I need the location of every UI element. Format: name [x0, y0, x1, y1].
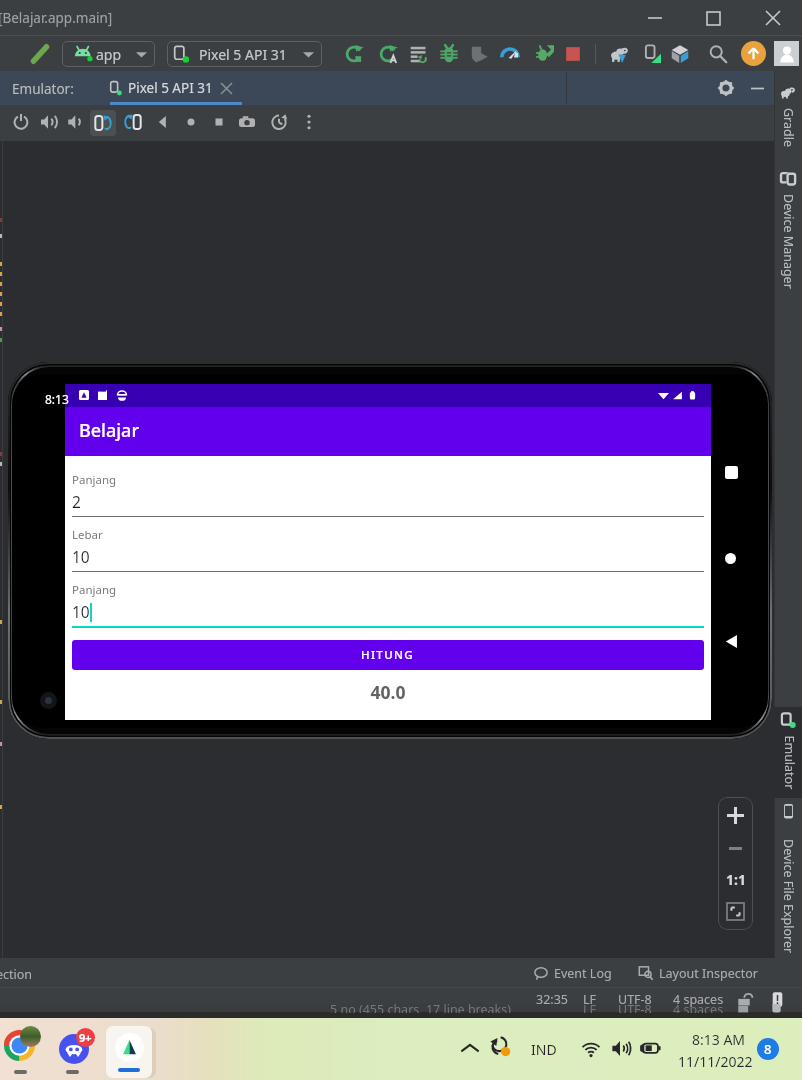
staticText: 8:13	[45, 391, 69, 407]
button[interactable]: OneDrive sync	[486, 1032, 514, 1060]
staticText: Lebar	[72, 527, 103, 543]
button[interactable]: Rotate right	[120, 109, 146, 135]
staticText: app	[96, 45, 122, 64]
button[interactable]: Notifications	[768, 990, 786, 1008]
staticText: 2	[72, 491, 81, 512]
staticText: Pixel 5 API 31	[199, 45, 287, 64]
button[interactable]: Discord	[52, 1018, 104, 1076]
button[interactable]: Device File Explorer	[774, 798, 802, 974]
staticText: 40.0	[65, 680, 711, 704]
button[interactable]: Lock	[736, 990, 754, 1008]
button[interactable]: Run with coverage	[373, 38, 404, 69]
staticText: IND	[531, 1040, 557, 1059]
button[interactable]: Build	[24, 38, 55, 69]
button[interactable]: Overview	[206, 109, 232, 135]
staticText: 10	[72, 546, 90, 567]
button[interactable]: Minimize	[625, 0, 684, 36]
staticText: LF	[583, 991, 597, 1008]
button[interactable]: More options	[296, 109, 322, 135]
staticText: 10	[72, 601, 90, 622]
button[interactable]: Home	[725, 553, 736, 564]
staticText: Pixel 5 API 31	[128, 79, 213, 97]
staticText: Emulator	[780, 735, 797, 789]
button[interactable]: HITUNG	[72, 640, 704, 670]
button[interactable]: app	[62, 41, 155, 67]
staticText: Belajar	[79, 418, 140, 443]
staticText: 32:35	[536, 991, 568, 1008]
button[interactable]: Stop	[557, 38, 588, 69]
button[interactable]: Emulator	[774, 707, 802, 798]
button[interactable]: SDK Manager	[664, 38, 695, 69]
button[interactable]: Debug	[433, 38, 464, 69]
staticText: ection	[0, 966, 33, 983]
button[interactable]: Device Manager	[636, 38, 667, 69]
button[interactable]: Android Studio	[104, 1018, 156, 1078]
button[interactable]: Gradle	[604, 38, 635, 69]
button[interactable]: Pixel 5 API 31	[167, 41, 322, 67]
button[interactable]: Settings	[714, 76, 738, 100]
staticText: Emulator:	[12, 80, 74, 98]
button[interactable]: Notifications	[757, 1038, 779, 1060]
staticText: 5 no (455 chars, 17 line breaks)	[330, 1004, 511, 1013]
button[interactable]: Account	[774, 41, 799, 66]
staticText: [Belajar.app.main]	[0, 9, 113, 27]
staticText: Panjang	[72, 472, 117, 488]
staticText: Device Manager	[780, 194, 797, 289]
button[interactable]: Show hidden icons	[456, 1034, 484, 1062]
button[interactable]: Rotate left	[90, 110, 116, 136]
button[interactable]: Volume up	[36, 109, 62, 135]
staticText: 11/11/2022	[678, 1052, 753, 1071]
button[interactable]: Volume	[607, 1034, 635, 1062]
button[interactable]: History	[266, 109, 292, 135]
button[interactable]: Google Chrome	[0, 1018, 52, 1076]
button[interactable]: Actual size	[718, 864, 753, 894]
button[interactable]: Battery	[636, 1034, 664, 1062]
button[interactable]: Pixel 5 API 31	[108, 71, 232, 105]
staticText: Device File Explorer	[780, 839, 797, 954]
staticText: 4 spaces	[673, 991, 724, 1008]
button[interactable]: Attach debugger	[463, 38, 494, 69]
staticText: Panjang	[72, 582, 117, 598]
button[interactable]: Device Manager	[774, 165, 802, 298]
button[interactable]: Zoom out	[718, 833, 753, 863]
button[interactable]: Back	[150, 109, 176, 135]
button[interactable]: Profiler	[494, 38, 525, 69]
staticText: 1:1	[726, 870, 746, 889]
button[interactable]: Layout Inspector	[639, 962, 758, 984]
button[interactable]: Run	[339, 38, 370, 69]
button[interactable]: Overview	[725, 466, 738, 479]
button[interactable]: Maximize	[684, 0, 743, 36]
button[interactable]: Zoom in	[718, 800, 753, 830]
staticText: LF	[583, 1004, 597, 1013]
staticText: UTF-8	[618, 1004, 652, 1013]
button[interactable]: Gradle	[774, 79, 802, 156]
staticText: 4 spaces	[673, 1004, 724, 1013]
button[interactable]: Network	[577, 1034, 605, 1062]
button[interactable]: Event Log	[534, 962, 612, 984]
button[interactable]: Update	[741, 41, 766, 66]
staticText: Layout Inspector	[659, 965, 758, 982]
staticText: 8	[764, 1040, 772, 1058]
staticText: 8:13 AM	[692, 1030, 746, 1049]
button[interactable]: Logcat	[403, 38, 434, 69]
staticText: Gradle	[780, 108, 797, 147]
button[interactable]: Home	[178, 109, 204, 135]
button[interactable]: Apply changes	[529, 38, 560, 69]
button[interactable]: Search	[702, 38, 733, 69]
button[interactable]: Fit to screen	[718, 896, 753, 926]
staticText: UTF-8	[618, 991, 652, 1008]
button[interactable]: Power	[8, 109, 34, 135]
staticText: Event Log	[554, 965, 612, 982]
staticText: HITUNG	[361, 647, 415, 663]
button[interactable]: Close	[743, 0, 802, 36]
button[interactable]: Back	[723, 633, 739, 649]
button[interactable]: Volume down	[62, 109, 88, 135]
staticText: 9+	[79, 1030, 92, 1045]
button[interactable]: Screenshot	[234, 109, 260, 135]
button[interactable]: Hide	[745, 76, 769, 100]
